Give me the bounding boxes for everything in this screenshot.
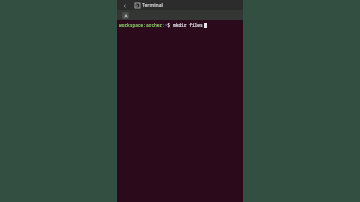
- staticText: Terminal: [142, 2, 163, 9]
- button[interactable]: workspace:archer:~$ mkdir files: [117, 20, 243, 202]
- button[interactable]: Back: [120, 1, 129, 10]
- button[interactable]: Terminal: [142, 2, 163, 9]
- button[interactable]: New session: [122, 12, 129, 19]
- staticText: workspace:archer:~$ mkdir files: [119, 22, 203, 28]
